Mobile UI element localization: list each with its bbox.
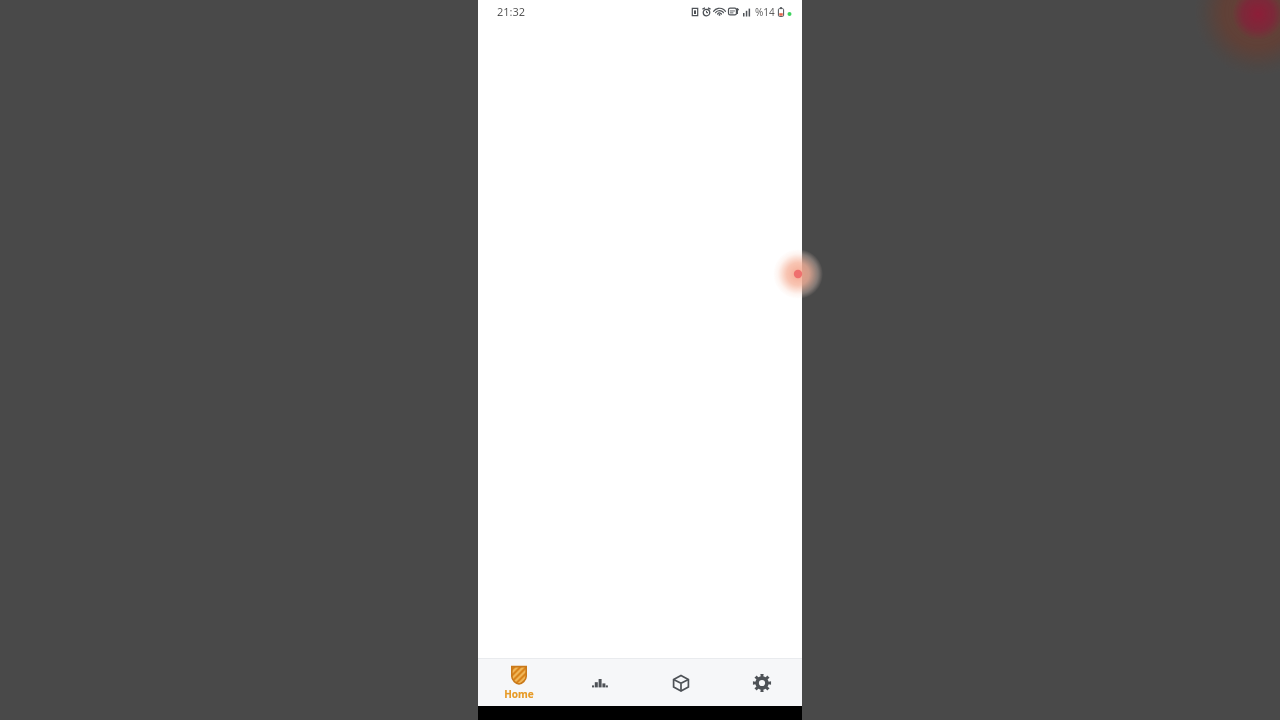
button[interactable]: Statistics (559, 659, 640, 706)
staticText: Home (504, 687, 534, 701)
staticText: %14 (755, 5, 775, 19)
button[interactable]: Settings (721, 659, 802, 706)
staticText: 21:32 (497, 4, 526, 19)
button[interactable]: Home (478, 659, 559, 706)
button[interactable]: Packages (640, 659, 721, 706)
